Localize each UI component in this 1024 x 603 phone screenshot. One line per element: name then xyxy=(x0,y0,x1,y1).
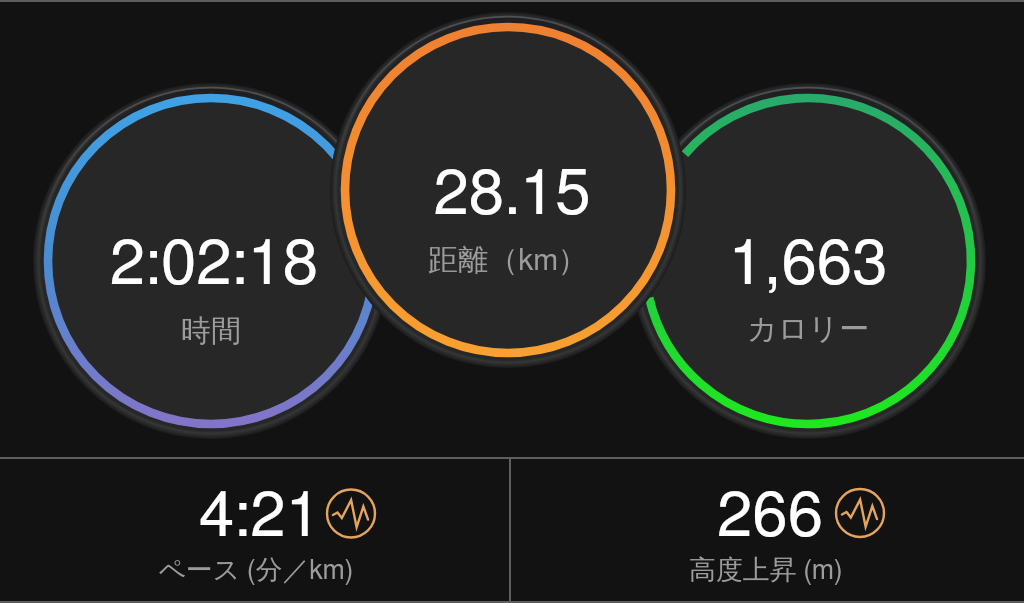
staticText: 4:21 xyxy=(10,485,510,603)
staticText: 2:02:18 xyxy=(0,233,464,603)
staticText: ペース (分／km) xyxy=(6,553,506,603)
staticText: 距離（km） xyxy=(258,241,758,603)
staticText: 28.15 xyxy=(262,163,762,603)
button[interactable]: 高度上昇 266 m xyxy=(511,459,1024,603)
staticText: 時間 xyxy=(0,312,461,603)
button[interactable]: 距離 28.15 km xyxy=(330,12,686,368)
button[interactable]: カロリー 1,663 xyxy=(630,83,986,439)
staticText: 266 xyxy=(520,485,1020,603)
staticText: 高度上昇 (m) xyxy=(516,553,1016,603)
staticText: カロリー xyxy=(558,310,1024,603)
button[interactable]: 経過時間 2:02:18 xyxy=(33,83,389,439)
button[interactable]: ペース 4:21 分/km xyxy=(0,459,512,603)
staticText: 1,663 xyxy=(558,233,1024,603)
